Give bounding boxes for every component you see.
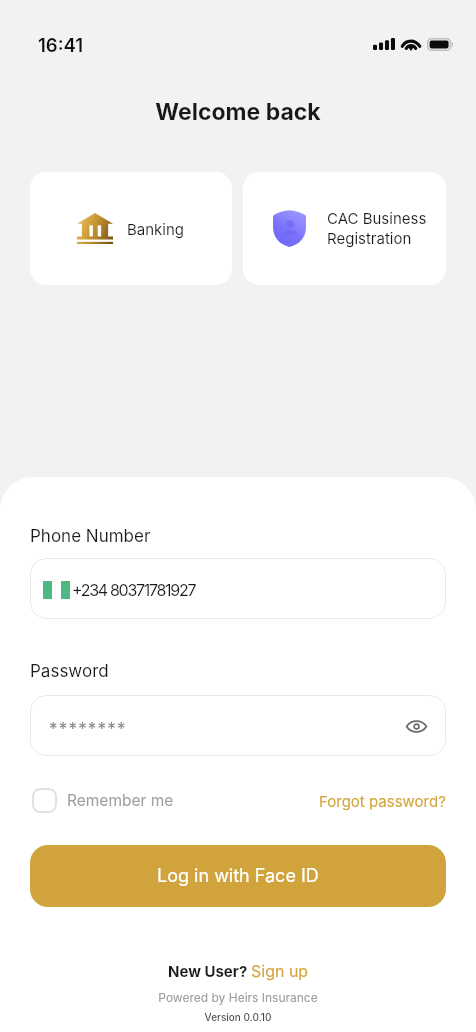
button[interactable]: Forgot password? xyxy=(319,792,446,810)
button[interactable]: Show password xyxy=(402,712,430,740)
button[interactable]: Log in with Face ID xyxy=(30,845,446,907)
staticText: Log in with Face ID xyxy=(157,865,319,887)
staticText: +234 80371781927 xyxy=(72,580,196,599)
staticText: CAC Business Registration xyxy=(327,209,427,248)
button[interactable]: Banking xyxy=(30,172,232,285)
button[interactable]: +234 80371781927 xyxy=(30,558,446,619)
button[interactable]: Sign up xyxy=(251,961,309,980)
button[interactable]: CAC Business Registration xyxy=(243,172,446,285)
staticText: Welcome back xyxy=(0,98,476,126)
staticText: Banking xyxy=(127,220,185,238)
staticText: Powered by Heirs Insurance xyxy=(0,990,476,1005)
button[interactable]: ******** xyxy=(30,695,446,756)
staticText: 16:41 xyxy=(38,34,84,56)
staticText: ******** xyxy=(49,719,127,740)
staticText: New User? xyxy=(168,962,251,980)
staticText: Phone Number xyxy=(30,526,151,547)
staticText: Remember me xyxy=(67,791,174,810)
button[interactable]: Remember me xyxy=(30,788,174,813)
staticText: Password xyxy=(30,661,109,682)
staticText: Version 0.0.10 xyxy=(0,1011,476,1023)
